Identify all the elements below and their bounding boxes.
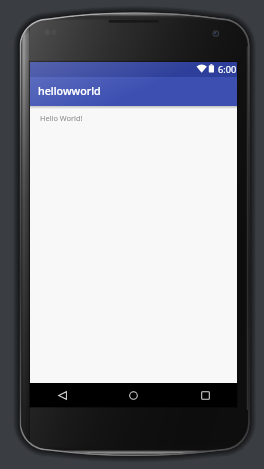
button[interactable]: Back <box>49 383 75 407</box>
button[interactable]: Recents <box>192 383 218 407</box>
staticText: hellowworld <box>38 84 101 99</box>
staticText: 6:00 <box>218 63 237 76</box>
staticText: Hello World! <box>40 113 83 123</box>
button[interactable]: hellowworld <box>30 77 237 106</box>
button[interactable]: Home <box>120 383 146 407</box>
